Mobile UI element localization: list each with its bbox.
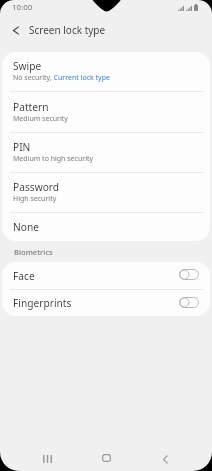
- staticText: Biometrics: [14, 247, 53, 257]
- button[interactable]: Home: [86, 442, 126, 471]
- button[interactable]: None: [2, 213, 210, 241]
- staticText: Pattern: [13, 100, 49, 114]
- staticText: None: [13, 220, 39, 234]
- staticText: PIN: [13, 140, 31, 154]
- staticText: Password: [13, 180, 60, 194]
- button[interactable]: Face: [2, 262, 210, 289]
- button[interactable]: PIN: [2, 133, 210, 172]
- staticText: Screen lock type: [29, 23, 106, 37]
- staticText: No security, Current lock type: [13, 73, 110, 83]
- staticText: Face: [13, 269, 35, 283]
- staticText: Fingerprints: [13, 296, 72, 310]
- staticText: Medium to high security: [13, 154, 94, 164]
- button[interactable]: Pattern: [2, 92, 210, 132]
- staticText: High security: [13, 194, 57, 204]
- staticText: Swipe: [13, 59, 42, 73]
- staticText: 10:00: [12, 2, 33, 13]
- button[interactable]: Recent apps: [27, 442, 67, 471]
- button[interactable]: Password: [2, 173, 210, 212]
- button[interactable]: Fingerprints: [2, 290, 210, 316]
- button[interactable]: Navigate up: [1, 15, 31, 45]
- staticText: Medium security: [13, 114, 68, 124]
- button[interactable]: Swipe: [2, 52, 210, 91]
- button[interactable]: Back: [145, 442, 185, 471]
